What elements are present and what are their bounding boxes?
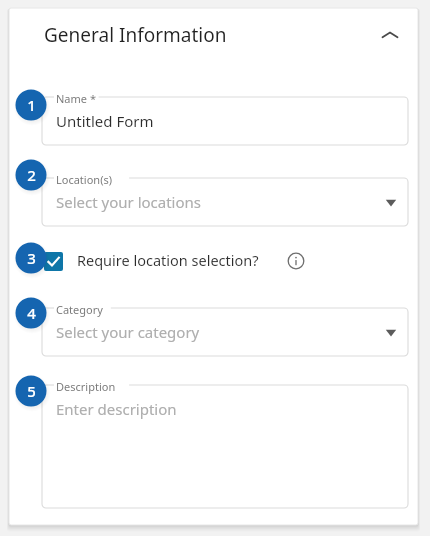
- button[interactable]: Location(s): [42, 178, 408, 226]
- staticText: 3: [27, 248, 36, 268]
- button[interactable]: General Information: [30, 14, 410, 56]
- button[interactable]: Open Category dropdown: [380, 321, 402, 343]
- button[interactable]: Description: [42, 385, 408, 508]
- staticText: 1: [27, 95, 36, 115]
- staticText: 4: [27, 303, 36, 323]
- staticText: Require location selection?: [77, 250, 259, 270]
- button[interactable]: Category: [42, 308, 408, 356]
- staticText: Select your locations: [56, 192, 202, 212]
- staticText: Enter description: [56, 399, 177, 419]
- staticText: Description: [56, 379, 116, 394]
- staticText: Select your category: [56, 322, 200, 342]
- staticText: General Information: [44, 22, 227, 48]
- staticText: Location(s): [56, 172, 113, 187]
- staticText: 2: [27, 165, 36, 185]
- staticText: Name *: [56, 91, 96, 106]
- button[interactable]: Open Location(s) dropdown: [380, 191, 402, 213]
- staticText: Untitled Form: [56, 111, 154, 131]
- button[interactable]: More information: [286, 251, 306, 271]
- button[interactable]: Collapse section: [374, 19, 406, 51]
- staticText: Category: [56, 302, 103, 317]
- button[interactable]: Name *: [42, 97, 408, 145]
- staticText: 5: [27, 381, 36, 401]
- button[interactable]: Require location selection?: [44, 247, 306, 275]
